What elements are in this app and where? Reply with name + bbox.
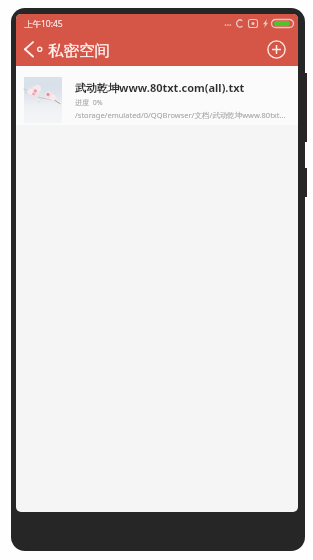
staticText: 进度 0% xyxy=(75,98,103,108)
staticText: /storage/emulated/0/QQBrowser/文档/武动乾坤www… xyxy=(75,110,286,120)
button[interactable]: Add xyxy=(261,32,291,66)
other: Back xyxy=(23,40,47,58)
staticText: 武动乾坤www.80txt.com(all).txt xyxy=(75,80,245,95)
button[interactable]: Back xyxy=(16,32,114,66)
staticText: 上午10:45 xyxy=(24,18,63,30)
button[interactable]: 武动乾坤www.80txt.com(all).txt xyxy=(16,66,298,125)
staticText: 私密空间 xyxy=(48,41,110,61)
